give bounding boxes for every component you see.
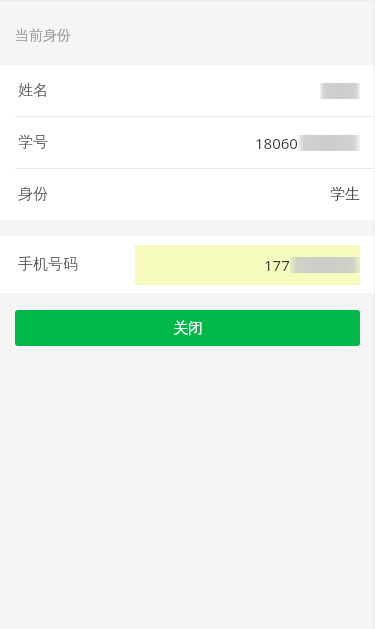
staticText: 手机号码	[18, 255, 78, 274]
staticText: 177	[264, 255, 290, 275]
button[interactable]: 学号	[0, 117, 375, 168]
button[interactable]: 关闭	[15, 310, 360, 346]
button[interactable]: 手机号码	[0, 236, 375, 293]
staticText: 关闭	[173, 319, 203, 338]
staticText: 18060	[255, 133, 298, 153]
staticText: 学生	[330, 185, 360, 204]
button[interactable]: 身份	[0, 169, 375, 220]
staticText: 当前身份	[15, 27, 71, 45]
staticText: 姓名	[18, 81, 48, 100]
staticText: 学号	[18, 133, 48, 152]
button[interactable]: 姓名	[0, 65, 375, 116]
staticText: 身份	[18, 185, 48, 204]
